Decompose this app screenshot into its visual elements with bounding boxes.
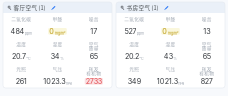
button[interactable]: Rename	[158, 4, 171, 10]
staticText: ppm	[137, 31, 144, 36]
staticText: 光照	[16, 65, 26, 72]
staticText: mg/m³	[55, 31, 66, 36]
staticText: 1021.3	[157, 77, 178, 86]
staticText: 光照	[129, 65, 139, 72]
staticText: 261	[16, 77, 27, 86]
button[interactable]: 书房空气 (1)	[120, 3, 158, 11]
staticText: 43	[164, 52, 173, 61]
staticText: 527	[124, 27, 136, 36]
staticText: 二氧化碳	[124, 15, 144, 22]
staticText: 34	[51, 52, 60, 61]
button[interactable]: Rename	[45, 4, 58, 10]
staticText: 气压	[52, 65, 62, 72]
staticText: ℃	[26, 56, 30, 61]
staticText: 甲醛	[165, 15, 175, 22]
staticText: 65	[90, 52, 98, 61]
staticText: 2733	[86, 77, 102, 86]
staticText: 湿度	[165, 40, 175, 47]
staticText: 噪音	[202, 15, 212, 22]
staticText: %	[173, 56, 177, 61]
staticText: 空气	[89, 40, 99, 47]
staticText: 甲醛	[52, 15, 62, 22]
staticText: 挥发	[89, 65, 99, 72]
staticText: 0	[162, 27, 167, 36]
staticText: %	[60, 56, 64, 61]
staticText: 1023.3	[43, 77, 65, 86]
staticText: 484	[10, 27, 24, 36]
staticText: 气压	[165, 65, 175, 72]
staticText: 挥发	[202, 65, 212, 72]
staticText: mg/m³	[168, 31, 179, 36]
staticText: 349	[128, 77, 141, 86]
staticText: 65	[203, 52, 211, 61]
staticText: 0	[49, 27, 54, 36]
staticText: 17	[90, 27, 97, 36]
staticText: 温度	[16, 40, 26, 47]
staticText: 湿度	[52, 40, 62, 47]
staticText: ppm	[25, 31, 32, 36]
staticText: 20.2	[125, 52, 139, 61]
staticText: hPa	[66, 81, 72, 86]
staticText: 温度	[129, 40, 139, 47]
staticText: hPa	[178, 81, 184, 86]
staticText: 噪音	[89, 15, 99, 22]
staticText: 二氧化碳	[11, 15, 31, 22]
staticText: 客厅空气 (1)	[13, 3, 45, 11]
staticText: 质量	[89, 45, 99, 52]
staticText: 质量	[202, 45, 212, 52]
staticText: 空气	[202, 40, 212, 47]
staticText: ℃	[139, 56, 143, 61]
staticText: 有机物	[199, 70, 214, 77]
staticText: 书房空气 (1)	[126, 3, 158, 11]
staticText: 20.7	[12, 52, 26, 61]
staticText: 13	[203, 27, 210, 36]
staticText: 有机物	[86, 70, 101, 77]
staticText: 827	[201, 77, 213, 86]
button[interactable]: 客厅空气 (1)	[7, 3, 45, 11]
